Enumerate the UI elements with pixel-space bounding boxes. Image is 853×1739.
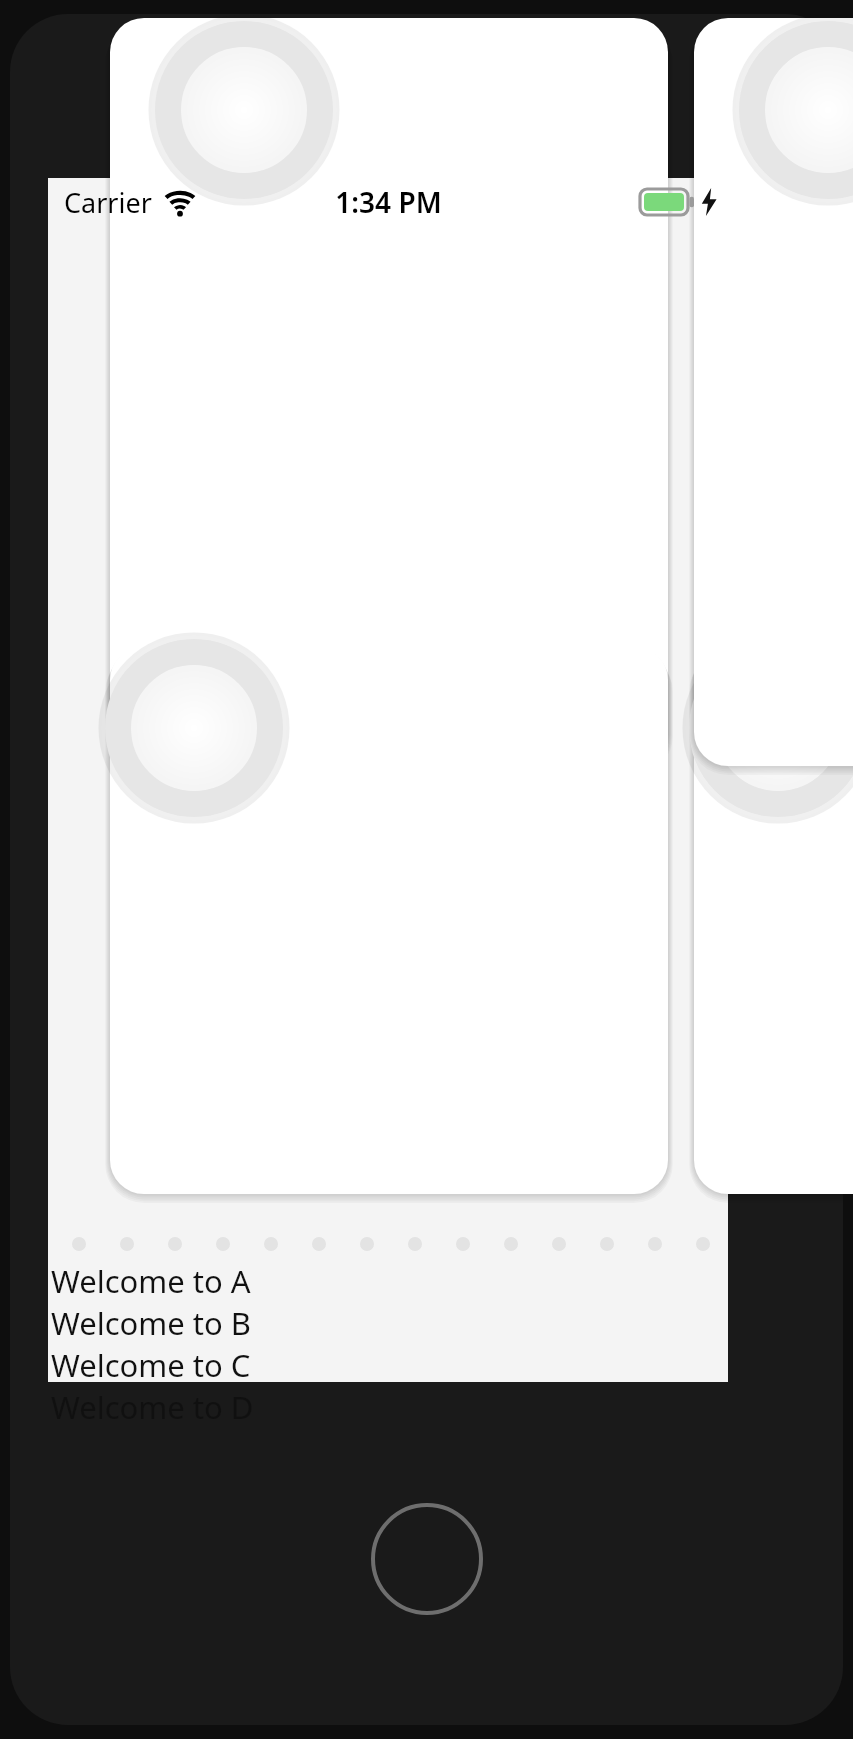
button[interactable] bbox=[72, 1237, 86, 1251]
staticText: Welcome to D bbox=[51, 1386, 254, 1428]
button[interactable] bbox=[694, 18, 853, 766]
button[interactable]: Home bbox=[371, 1503, 483, 1615]
button[interactable] bbox=[696, 1237, 710, 1251]
button[interactable] bbox=[504, 1237, 518, 1251]
button[interactable] bbox=[216, 1237, 230, 1251]
button[interactable] bbox=[168, 1237, 182, 1251]
staticText: 1:34 PM bbox=[335, 183, 442, 221]
button[interactable] bbox=[110, 646, 668, 1194]
button[interactable] bbox=[360, 1237, 374, 1251]
button[interactable] bbox=[264, 1237, 278, 1251]
button[interactable] bbox=[600, 1237, 614, 1251]
button[interactable] bbox=[408, 1237, 422, 1251]
button[interactable] bbox=[120, 1237, 134, 1251]
button[interactable] bbox=[456, 1237, 470, 1251]
button[interactable] bbox=[552, 1237, 566, 1251]
staticText: Welcome to C bbox=[51, 1344, 251, 1386]
button[interactable] bbox=[110, 18, 668, 766]
button[interactable] bbox=[694, 646, 853, 1194]
staticText: Welcome to A bbox=[51, 1260, 251, 1302]
staticText: Welcome to B bbox=[51, 1302, 252, 1344]
button[interactable] bbox=[312, 1237, 326, 1251]
button[interactable] bbox=[648, 1237, 662, 1251]
staticText: Carrier bbox=[64, 184, 152, 221]
